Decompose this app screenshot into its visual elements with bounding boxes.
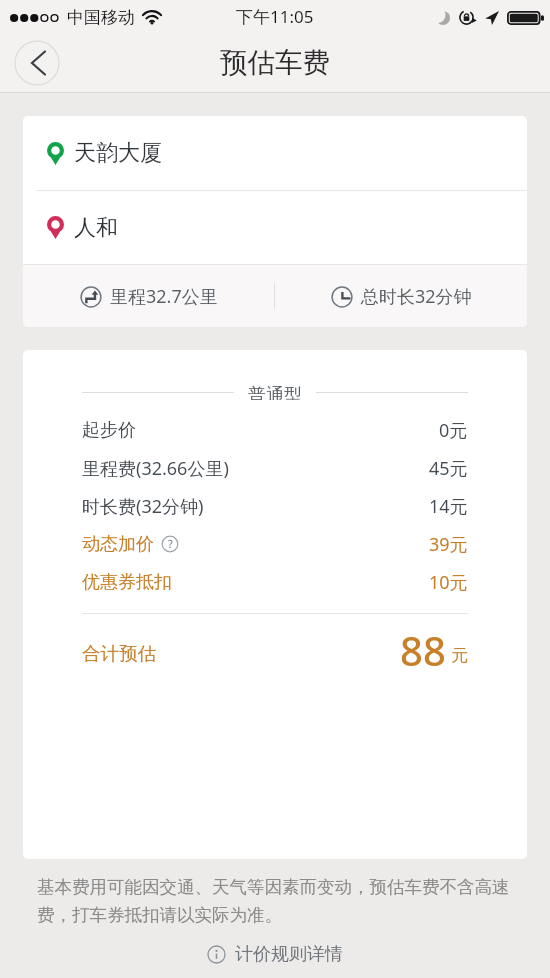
button[interactable]: Help (161, 535, 179, 553)
staticText: ? (168, 536, 173, 551)
button[interactable]: 天韵大厦 (47, 116, 527, 190)
button[interactable]: Back (14, 40, 60, 86)
staticText: 0元 (439, 418, 468, 443)
button[interactable]: 计价规则详情 (0, 939, 550, 969)
staticText: 优惠券抵扣 (82, 571, 172, 594)
staticText: 中国移动 (67, 7, 135, 28)
button[interactable]: 人和 (47, 191, 527, 264)
button[interactable]: 合计预估 (82, 634, 468, 678)
staticText: 普通型 (248, 384, 302, 400)
staticText: 下午11:05 (236, 5, 314, 28)
staticText: 39元 (429, 532, 468, 557)
staticText: 里程费(32.66公里) (82, 456, 229, 481)
staticText: 人和 (74, 214, 118, 242)
staticText: 合计预估 (82, 642, 156, 665)
staticText: 45元 (429, 456, 468, 481)
staticText: 动态加价 (82, 533, 154, 556)
staticText: 88 (400, 623, 446, 667)
staticText: 预估车费 (220, 46, 330, 81)
staticText: 元 (451, 645, 468, 666)
staticText: 时长费(32分钟) (82, 494, 204, 519)
staticText: 总时长32分钟 (361, 284, 472, 309)
staticText: 里程32.7公里 (110, 284, 218, 309)
staticText: 天韵大厦 (74, 139, 162, 167)
staticText: 10元 (429, 570, 468, 595)
staticText: 计价规则详情 (235, 943, 343, 966)
staticText: 基本费用可能因交通、天气等因素而变动，预估车费不含高速费，打车券抵扣请以实际为准… (37, 876, 513, 926)
staticText: 14元 (429, 494, 468, 519)
staticText: 起步价 (82, 419, 136, 442)
